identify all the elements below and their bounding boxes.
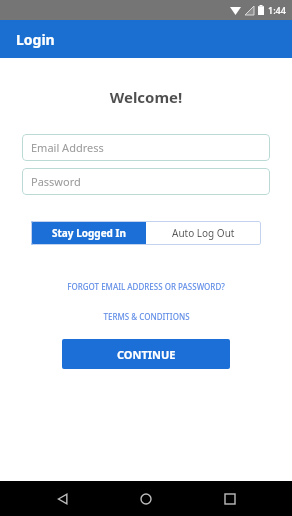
button[interactable]: Recent apps	[209, 481, 251, 516]
button[interactable]: Email Address	[22, 134, 270, 161]
staticText: 1:44	[268, 4, 286, 16]
staticText: Login	[16, 30, 55, 49]
button[interactable]: CONTINUE	[62, 339, 230, 369]
button[interactable]: Stay Logged In	[31, 221, 146, 245]
button[interactable]: Home	[125, 481, 167, 516]
staticText: CONTINUE	[117, 347, 176, 362]
staticText: TERMS & CONDITIONS	[103, 311, 190, 322]
staticText: Welcome!	[0, 87, 292, 107]
button[interactable]: FORGOT EMAIL ADDRESS OR PASSWORD?	[0, 281, 292, 292]
staticText: Stay Logged In	[52, 226, 126, 240]
staticText: FORGOT EMAIL ADDRESS OR PASSWORD?	[67, 281, 225, 292]
staticText: Password	[31, 174, 81, 189]
button[interactable]: Password	[22, 168, 270, 195]
button[interactable]: Auto Log Out	[146, 221, 261, 245]
button[interactable]: Back	[42, 481, 84, 516]
button[interactable]: TERMS & CONDITIONS	[0, 311, 292, 322]
staticText: Email Address	[31, 140, 104, 155]
staticText: Auto Log Out	[172, 226, 235, 240]
